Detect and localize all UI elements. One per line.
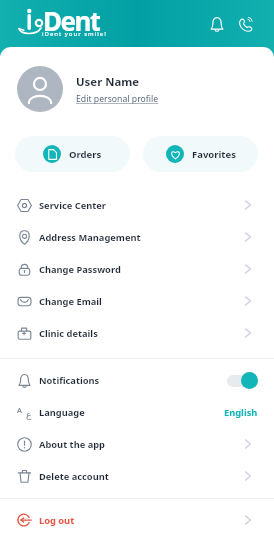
button[interactable]: Clinic details xyxy=(0,317,274,349)
button[interactable]: Favorites xyxy=(143,136,258,172)
staticText: User Name xyxy=(76,74,140,90)
staticText: Delete account xyxy=(39,470,109,483)
staticText: Orders xyxy=(69,148,102,161)
staticText: Log out xyxy=(39,514,75,527)
staticText: Language xyxy=(39,406,85,419)
button[interactable]: Change Password xyxy=(0,253,274,285)
button[interactable]: Orders xyxy=(15,136,130,172)
staticText: Clinic details xyxy=(39,327,98,340)
button[interactable]: Call support xyxy=(232,11,258,37)
button[interactable]: Edit personal profile xyxy=(76,93,159,105)
staticText: English xyxy=(224,406,258,419)
button[interactable]: Notifications toggle xyxy=(227,372,258,389)
staticText: Dent xyxy=(43,3,100,35)
staticText: Service Center xyxy=(39,199,106,212)
staticText: Change Email xyxy=(39,295,102,308)
button[interactable]: Delete account xyxy=(0,460,274,492)
staticText: Address Management xyxy=(39,231,141,244)
staticText: Notifications xyxy=(39,374,100,387)
button[interactable]: Notifications xyxy=(204,11,230,37)
staticText: iDent your smile! xyxy=(42,30,107,38)
button[interactable]: About the app xyxy=(0,428,274,460)
button[interactable]: Address Management xyxy=(0,221,274,253)
button[interactable]: Service Center xyxy=(0,189,274,221)
button[interactable]: Change Email xyxy=(0,285,274,317)
staticText: Change Password xyxy=(39,263,121,276)
staticText: Favorites xyxy=(192,148,236,161)
staticText: About the app xyxy=(39,438,105,451)
staticText: ع xyxy=(26,410,32,420)
button[interactable]: Log out xyxy=(0,504,274,536)
button[interactable]: Notifications xyxy=(0,364,274,396)
staticText: A xyxy=(17,405,22,415)
button[interactable]: A xyxy=(0,396,274,428)
